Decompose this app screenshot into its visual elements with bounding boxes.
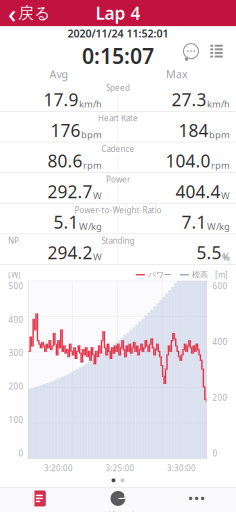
staticText: 404.4	[175, 180, 220, 203]
staticText: 2020/11/24 11:52:01	[67, 26, 168, 41]
staticText: 3:30:00	[167, 463, 196, 473]
staticText: 0:15:07	[82, 42, 154, 70]
staticText: 80.6	[47, 149, 82, 172]
staticText: 5.5	[196, 241, 221, 264]
staticText: 7.1	[181, 210, 206, 233]
staticText: 200	[8, 381, 23, 392]
staticText: Max	[166, 67, 188, 81]
staticText: 184	[178, 119, 208, 142]
staticText: Cadence	[101, 143, 134, 154]
staticText: 292.7	[47, 180, 92, 203]
staticText: W	[221, 190, 230, 202]
staticText: 176	[50, 119, 80, 142]
staticText: ‹	[8, 0, 16, 30]
staticText: Standing	[101, 235, 134, 246]
staticText: 0	[18, 448, 23, 459]
staticText: [W]	[8, 269, 21, 280]
staticText: 戻る	[18, 3, 50, 23]
staticText: bpm	[209, 128, 230, 141]
button[interactable]: ラップリスト	[205, 39, 228, 64]
staticText: 294.2	[47, 241, 92, 264]
staticText: Power	[106, 174, 130, 185]
staticText: 3:25:00	[105, 463, 134, 473]
button[interactable]: セグメント	[79, 485, 157, 512]
staticText: Power-to-Weight-Ratio	[74, 205, 161, 215]
staticText: 3:20:00	[44, 463, 73, 473]
staticText: W/kg	[207, 220, 230, 233]
button[interactable]: もっと	[157, 485, 236, 512]
staticText: 200	[212, 392, 227, 403]
staticText: Lap 4	[95, 2, 140, 25]
staticText: km/h	[207, 98, 230, 110]
staticText: 500	[8, 281, 23, 291]
staticText: 5.1	[53, 210, 78, 233]
staticText: km/h	[79, 98, 102, 110]
staticText: 0	[212, 448, 217, 459]
staticText: パワー	[148, 270, 172, 280]
staticText: W	[93, 251, 102, 263]
staticText: 標高	[192, 270, 208, 280]
staticText: 300	[8, 348, 23, 358]
staticText: Heart Rate	[98, 113, 138, 123]
staticText: W	[93, 190, 102, 202]
staticText: 17.9	[43, 88, 78, 111]
button[interactable]: ワークアウトリスト	[0, 485, 79, 512]
staticText: セグメント	[98, 510, 138, 512]
staticText: NP	[8, 235, 19, 246]
staticText: 104.0	[165, 149, 210, 172]
staticText: 27.3	[171, 88, 206, 111]
staticText: 400	[212, 336, 227, 347]
staticText: Avg	[49, 67, 68, 81]
button[interactable]: コメント	[177, 37, 205, 66]
staticText: 400	[8, 314, 23, 325]
staticText: rpm	[211, 159, 230, 171]
staticText: 600	[212, 281, 227, 291]
staticText: %	[222, 251, 230, 263]
staticText: W/kg	[79, 220, 102, 233]
staticText: bpm	[81, 128, 102, 141]
staticText: Speed	[106, 82, 130, 93]
staticText: [m]	[215, 269, 228, 280]
staticText: 100	[8, 415, 23, 425]
button[interactable]: ‹	[0, 0, 58, 36]
staticText: rpm	[83, 159, 102, 171]
